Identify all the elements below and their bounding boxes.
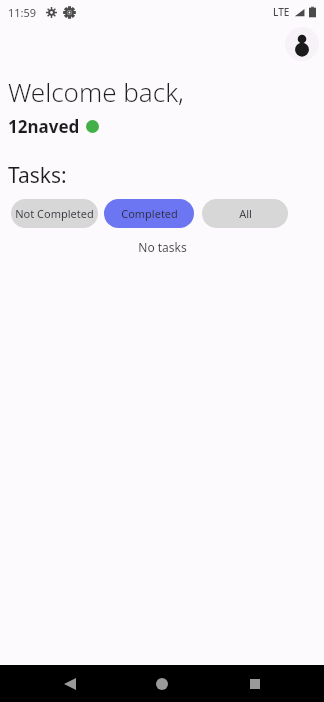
button[interactable]: Completed bbox=[104, 199, 194, 228]
staticText: 12naved bbox=[8, 115, 80, 138]
staticText: LTE bbox=[273, 5, 290, 19]
button[interactable]: Back bbox=[47, 665, 93, 702]
staticText: No tasks bbox=[138, 239, 187, 255]
staticText: 11:59 bbox=[8, 5, 37, 20]
staticText: All bbox=[239, 206, 252, 221]
button[interactable]: Home bbox=[139, 665, 185, 702]
button[interactable]: Profile bbox=[285, 27, 319, 61]
staticText: Tasks: bbox=[8, 161, 67, 190]
button[interactable]: Recent apps bbox=[232, 665, 278, 702]
button[interactable]: Not Completed bbox=[11, 199, 98, 228]
button[interactable]: All bbox=[202, 199, 288, 228]
staticText: Completed bbox=[121, 206, 178, 221]
staticText: Not Completed bbox=[15, 206, 94, 221]
staticText: Welcome back, bbox=[8, 74, 184, 109]
